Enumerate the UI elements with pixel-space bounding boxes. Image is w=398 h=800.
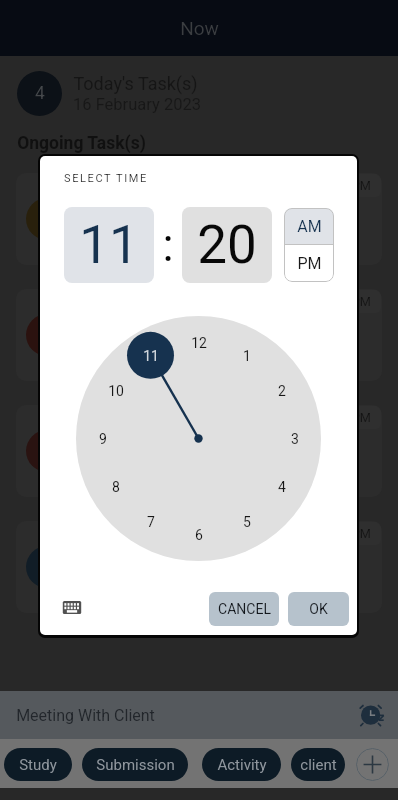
staticText: 11	[143, 348, 159, 364]
staticText: 11:20 PM	[317, 294, 371, 309]
staticText: 5	[243, 514, 251, 530]
staticText: 4	[278, 479, 286, 495]
button[interactable]: Snooze alarm	[361, 703, 384, 726]
button[interactable]: 11:20 PM	[16, 289, 382, 381]
button[interactable]: CANCEL	[209, 592, 279, 626]
staticText: PM	[297, 254, 322, 273]
staticText: 11:20 PM	[317, 178, 371, 193]
button[interactable]: Add	[356, 748, 389, 781]
staticText: :	[162, 218, 174, 272]
button[interactable]: 11:20 PM	[16, 521, 382, 613]
staticText: 20	[197, 214, 257, 276]
staticText: 3	[291, 431, 299, 447]
button[interactable]: PM	[284, 245, 334, 282]
staticText: client	[300, 756, 337, 774]
button[interactable]: 11:20 PM	[16, 173, 382, 265]
staticText: CANCEL	[218, 601, 271, 617]
staticText: 6	[195, 527, 203, 543]
staticText: Now	[180, 17, 219, 39]
staticText: 9	[99, 431, 107, 447]
staticText: Meeting With Client	[16, 706, 155, 725]
staticText: Today's Task(s)	[73, 73, 198, 94]
staticText: OK	[309, 601, 328, 617]
staticText: 7	[147, 514, 155, 530]
staticText: 2	[278, 383, 286, 399]
button[interactable]: Activity	[202, 748, 281, 781]
staticText: 11:20 PM	[317, 526, 371, 541]
staticText: Submission	[96, 756, 175, 774]
staticText: Study	[19, 756, 57, 774]
staticText: 4	[35, 83, 45, 104]
staticText: SELECT TIME	[64, 172, 148, 185]
staticText: 10	[108, 383, 124, 399]
button[interactable]: OK	[288, 592, 349, 626]
staticText: 11	[79, 214, 139, 276]
staticText: 11:20 PM	[317, 410, 371, 425]
staticText: 16 February 2023	[73, 95, 201, 114]
button[interactable]: 11	[64, 207, 154, 283]
button[interactable]: Switch to text input	[62, 600, 82, 615]
staticText: 1	[243, 348, 251, 364]
button[interactable]: AM	[284, 208, 334, 244]
staticText: AM	[297, 217, 322, 236]
staticText: 8	[112, 479, 120, 495]
button[interactable]: Study	[4, 748, 72, 781]
button[interactable]: client	[291, 748, 345, 781]
button[interactable]: 11:20 PM	[16, 405, 382, 497]
staticText: 12	[191, 335, 207, 351]
staticText: Ongoing Task(s)	[17, 133, 146, 154]
button[interactable]: Submission	[82, 748, 188, 781]
staticText: Activity	[217, 756, 267, 774]
button[interactable]: 20	[182, 207, 272, 283]
